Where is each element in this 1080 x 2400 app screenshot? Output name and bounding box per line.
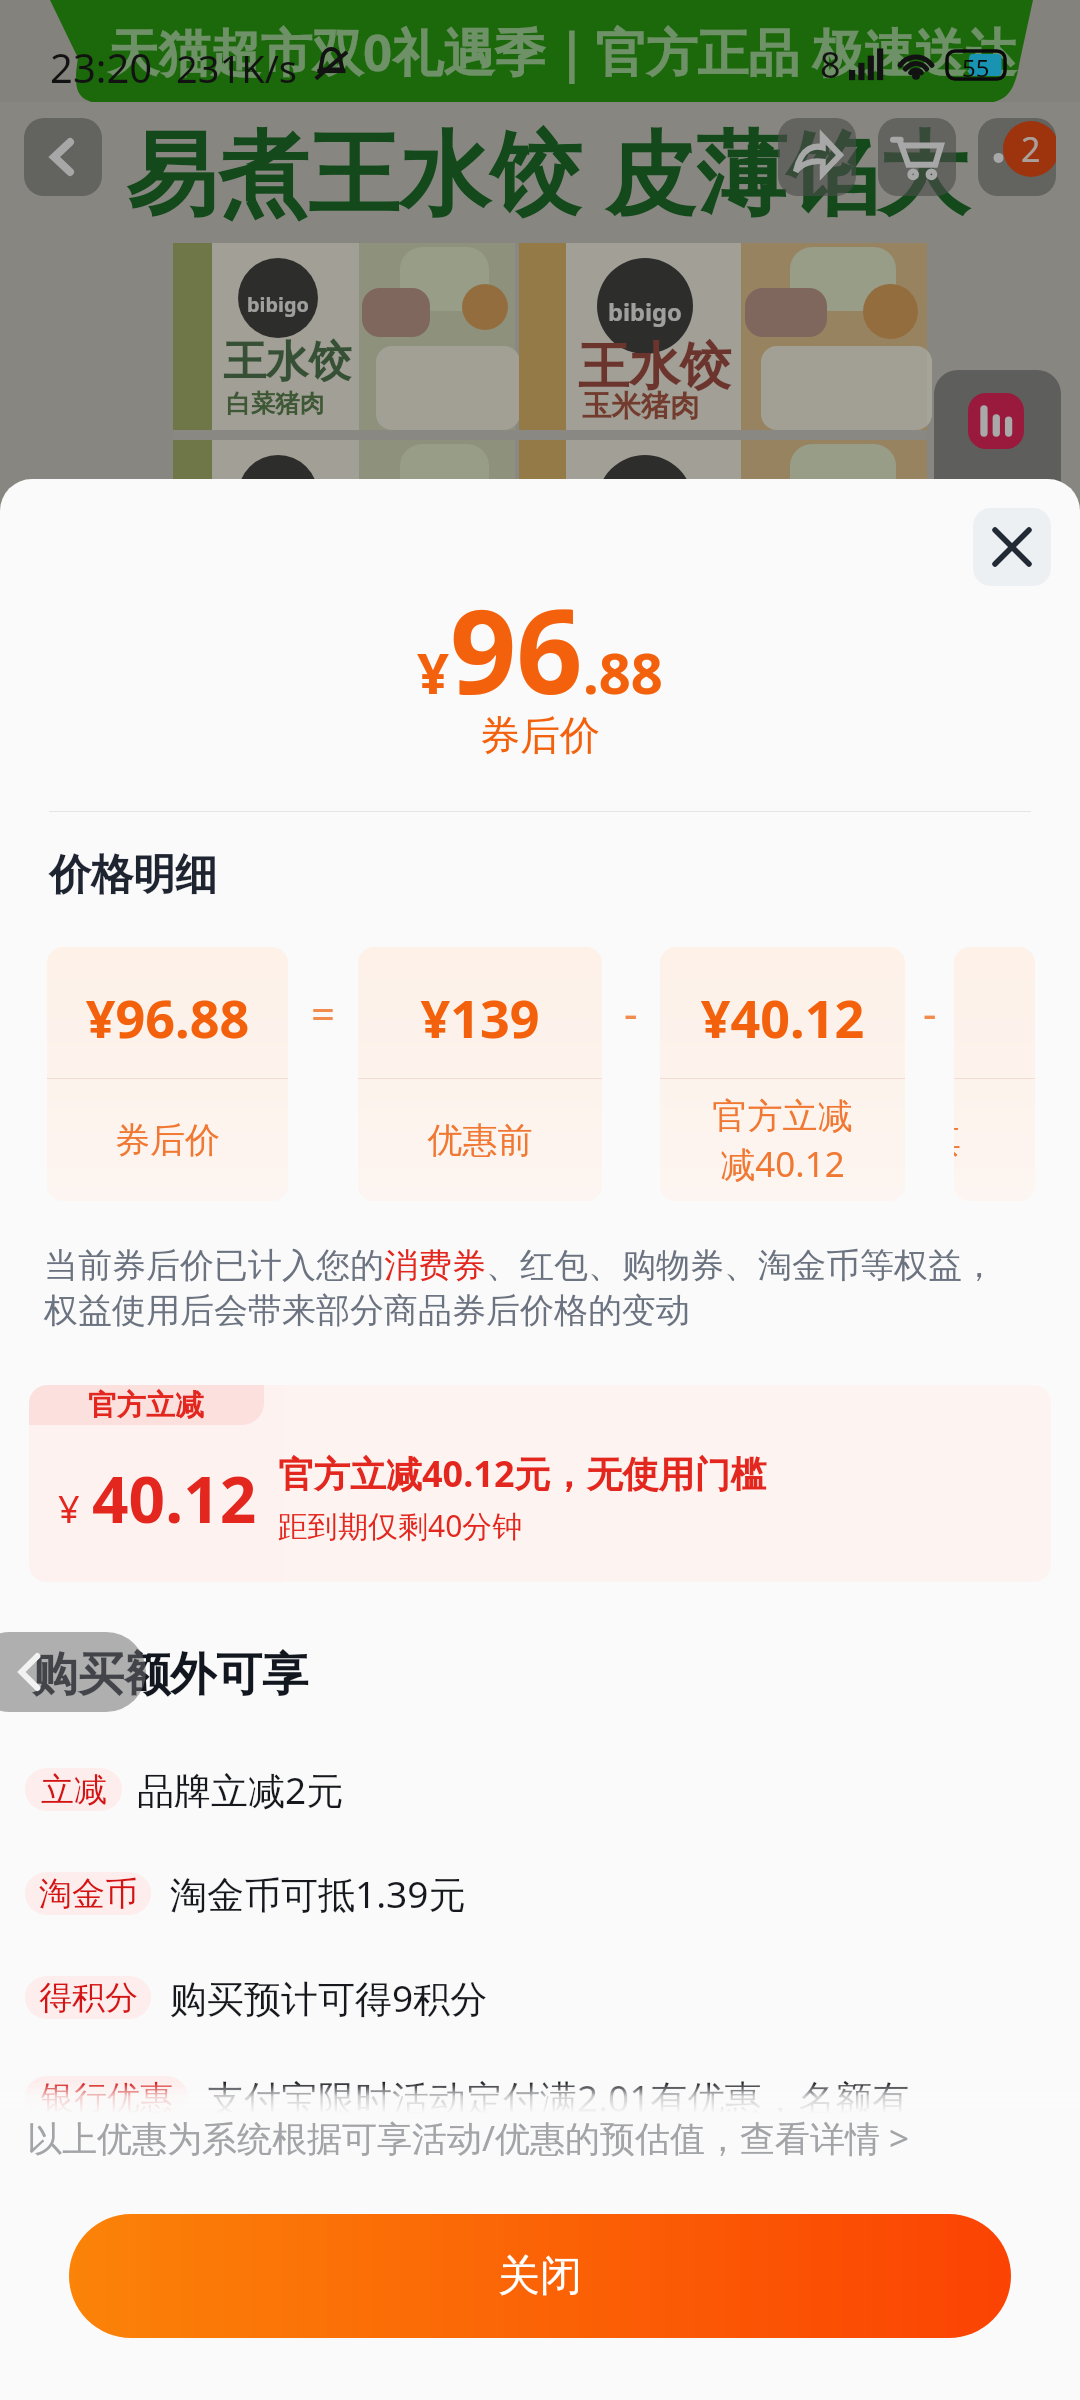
staticText: ¥ — [417, 634, 450, 710]
staticText: 优惠前 — [358, 1118, 602, 1162]
button[interactable]: ¥139 — [358, 947, 602, 1201]
button[interactable]: Back — [0, 1632, 146, 1712]
staticText: bibigo — [247, 291, 309, 318]
staticText: = — [311, 984, 336, 1041]
staticText: - — [923, 984, 937, 1041]
staticText: .88 — [583, 634, 663, 710]
staticText: 淘金币可抵1.39元 — [170, 1868, 466, 1919]
staticText: 2 — [1021, 126, 1041, 172]
button[interactable]: 得积分 — [25, 1972, 1080, 2023]
staticText: 55 — [962, 51, 990, 79]
staticText: 8 — [820, 40, 841, 89]
staticText: 231K/s — [176, 42, 298, 94]
staticText: 易煮王水饺 皮薄馅大 — [126, 109, 969, 233]
staticText: 券后价 — [0, 710, 1080, 760]
staticText: 支付宝限时活动定付满2.01有优惠，名额有 — [207, 2072, 910, 2123]
button[interactable]: ¥40.12 — [660, 947, 905, 1201]
button[interactable]: ¥96.88 — [47, 947, 288, 1201]
staticText: 品牌立减2元 — [137, 1764, 344, 1815]
staticText: 以上优惠为系统根据可享活动/优惠的预估值，查看详情 > — [27, 2114, 910, 2162]
staticText: 23:20 — [50, 40, 153, 94]
staticText: 王水饺 — [223, 335, 352, 389]
button[interactable]: 其 — [954, 947, 1035, 1201]
button[interactable]: 淘金币 — [25, 1868, 1080, 1919]
staticText: 立减 — [41, 1769, 107, 1811]
staticText: 关闭 — [498, 2250, 582, 2303]
staticText: 官方立减 — [88, 1387, 204, 1424]
button[interactable]: 关闭 — [69, 2214, 1011, 2338]
staticText: 天猫超市双0礼遇季｜官方正品 极速送达 — [108, 16, 1017, 86]
button[interactable]: 银行优惠 — [25, 2072, 1080, 2123]
staticText: - — [624, 984, 638, 1041]
staticText: 银行优惠 — [41, 2077, 173, 2119]
button[interactable]: Close — [973, 508, 1051, 586]
staticText: 淘金币 — [39, 1873, 138, 1915]
staticText: 当前券后价已计入您的消费券、红包、购物券、淘金币等权益，权益使用后会带来部分商品… — [44, 1244, 1024, 1332]
staticText: 40.12 — [92, 1455, 257, 1542]
button[interactable]: Back — [24, 118, 102, 196]
staticText: 官方立减40.12元，无使用门槛 — [278, 1449, 767, 1498]
staticText: bibigo — [608, 296, 682, 328]
button[interactable]: More — [978, 118, 1056, 196]
button[interactable]: 立减 — [25, 1764, 1080, 1815]
staticText: ¥ — [58, 1482, 80, 1534]
staticText: ¥96.88 — [47, 982, 288, 1053]
staticText: 96 — [450, 570, 583, 728]
staticText: 券后价 — [47, 1118, 288, 1162]
staticText: 价格明细 — [49, 849, 217, 902]
staticText: 玉米猪肉 — [582, 388, 700, 425]
staticText: 购买预计可得9积分 — [170, 1972, 488, 2023]
staticText: 官方立减 减40.12 — [660, 1094, 905, 1187]
staticText: 距到期仅剩40分钟 — [278, 1505, 523, 1546]
button[interactable]: 官方立减 — [29, 1385, 1051, 1582]
staticText: 得积分 — [39, 1977, 138, 2019]
staticText: 购买额外可享 — [32, 1646, 308, 1704]
staticText: ¥139 — [358, 982, 602, 1053]
button[interactable]: Cart — [878, 118, 956, 196]
button[interactable]: Ranking — [934, 370, 1061, 520]
staticText: 其 — [954, 1118, 984, 1162]
staticText: 白菜猪肉 — [226, 388, 325, 419]
staticText: ¥40.12 — [660, 982, 905, 1053]
staticText: 王水饺 — [578, 335, 731, 399]
button[interactable]: Share — [778, 118, 856, 196]
